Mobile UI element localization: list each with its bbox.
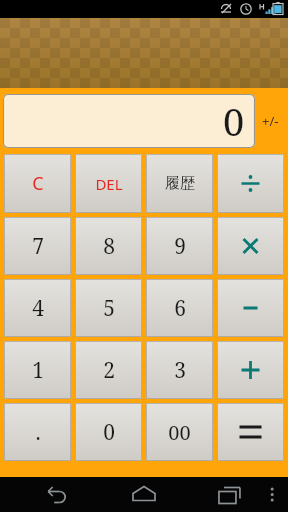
button[interactable]: Divide: [217, 154, 284, 213]
button[interactable]: 0: [3, 94, 255, 148]
staticText: 4: [32, 294, 44, 323]
staticText: 3: [174, 356, 186, 385]
staticText: 2: [103, 356, 115, 385]
button[interactable]: 2: [75, 341, 142, 399]
button[interactable]: 履歴: [146, 154, 213, 213]
button[interactable]: 8: [75, 217, 142, 275]
button[interactable]: 1: [4, 341, 71, 399]
button[interactable]: Equals: [217, 403, 284, 461]
button[interactable]: 0: [75, 403, 142, 461]
staticText: C: [32, 171, 44, 196]
button[interactable]: 9: [146, 217, 213, 275]
staticText: 9: [174, 232, 186, 261]
button[interactable]: 6: [146, 279, 213, 337]
staticText: 履歴: [165, 174, 195, 193]
button[interactable]: Multiply: [217, 217, 284, 275]
button[interactable]: +/-: [255, 94, 285, 148]
staticText: 0: [223, 95, 245, 147]
staticText: DEL: [95, 174, 123, 194]
staticText: 7: [32, 232, 44, 261]
staticText: 0: [103, 418, 115, 447]
staticText: +/-: [262, 112, 279, 130]
button[interactable]: .: [4, 403, 71, 461]
button[interactable]: C: [4, 154, 71, 213]
staticText: 5: [103, 294, 115, 323]
button[interactable]: 7: [4, 217, 71, 275]
staticText: .: [35, 418, 41, 447]
staticText: 1: [32, 356, 44, 385]
button[interactable]: 5: [75, 279, 142, 337]
button[interactable]: 00: [146, 403, 213, 461]
button[interactable]: DEL: [75, 154, 142, 213]
staticText: 6: [174, 294, 186, 323]
button[interactable]: Add: [217, 341, 284, 399]
button[interactable]: 3: [146, 341, 213, 399]
staticText: 00: [168, 419, 191, 446]
staticText: 8: [103, 232, 115, 261]
button[interactable]: Subtract: [217, 279, 284, 337]
button[interactable]: 4: [4, 279, 71, 337]
